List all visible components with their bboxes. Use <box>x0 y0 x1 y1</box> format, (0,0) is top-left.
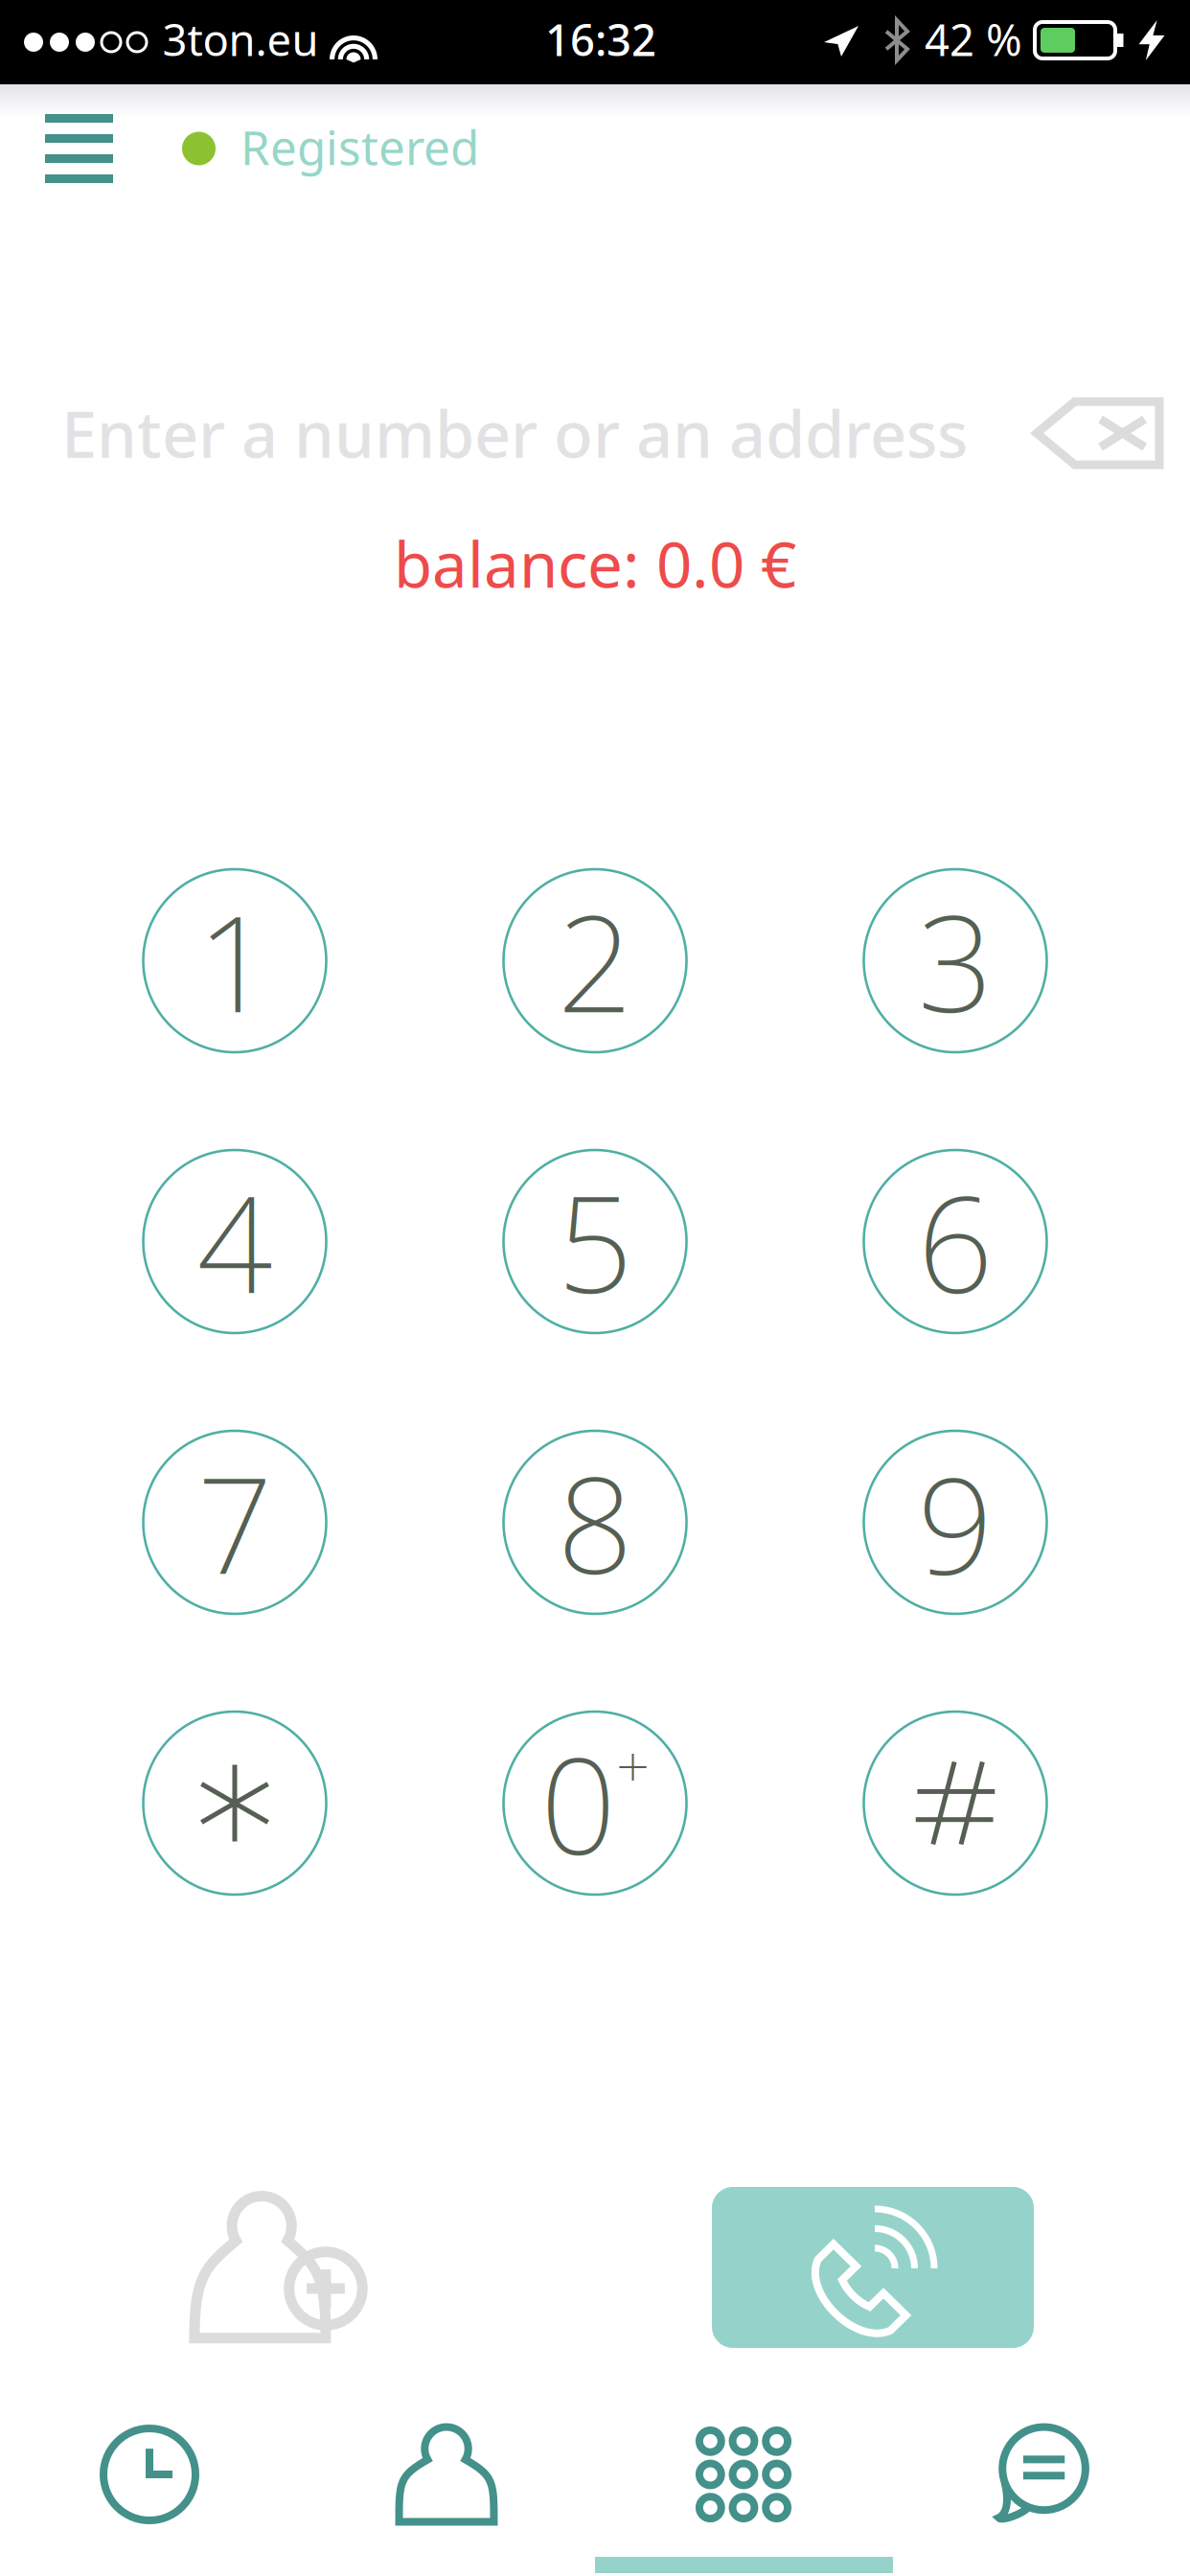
staticText: 3ton.eu <box>162 10 319 68</box>
button[interactable]: Delete <box>1019 381 1159 485</box>
staticText: 5 <box>557 1153 633 1330</box>
button[interactable]: 0 <box>503 1712 687 1895</box>
staticText: + <box>616 1726 650 1804</box>
button[interactable]: 9 <box>864 1431 1047 1614</box>
staticText: Registered <box>240 115 479 178</box>
staticText: 0 <box>540 1715 616 1891</box>
button[interactable]: 6 <box>864 1150 1047 1333</box>
button[interactable] <box>143 1712 326 1895</box>
button[interactable]: Messages <box>892 2398 1189 2551</box>
staticText: 4 <box>197 1153 273 1330</box>
staticText: 2 <box>557 872 633 1049</box>
staticText: 1 <box>197 872 273 1049</box>
staticText: 9 <box>917 1434 993 1610</box>
staticText: 6 <box>917 1153 993 1330</box>
staticText: 8 <box>557 1434 633 1610</box>
staticText: Enter a number or an address <box>61 391 968 476</box>
button[interactable]: Call <box>712 2187 1034 2348</box>
staticText: balance: 0.0 € <box>394 522 796 605</box>
button[interactable]: Contacts <box>298 2398 595 2551</box>
staticText: 42 % <box>925 10 1022 68</box>
button[interactable]: 7 <box>143 1431 326 1614</box>
staticText: 16:32 <box>545 10 656 68</box>
button[interactable]: Recents <box>1 2398 298 2551</box>
staticText: 7 <box>197 1434 273 1610</box>
staticText: 3 <box>917 872 993 1049</box>
button[interactable]: Menu <box>24 92 134 206</box>
button[interactable]: 1 <box>143 869 326 1052</box>
button[interactable] <box>864 1712 1047 1895</box>
button[interactable]: Add contact <box>171 2172 387 2363</box>
button[interactable]: 8 <box>503 1431 687 1614</box>
button[interactable]: 4 <box>143 1150 326 1333</box>
button[interactable]: 3 <box>864 869 1047 1052</box>
button[interactable]: 2 <box>503 869 687 1052</box>
button[interactable]: Keypad <box>595 2398 892 2551</box>
button[interactable]: 5 <box>503 1150 687 1333</box>
